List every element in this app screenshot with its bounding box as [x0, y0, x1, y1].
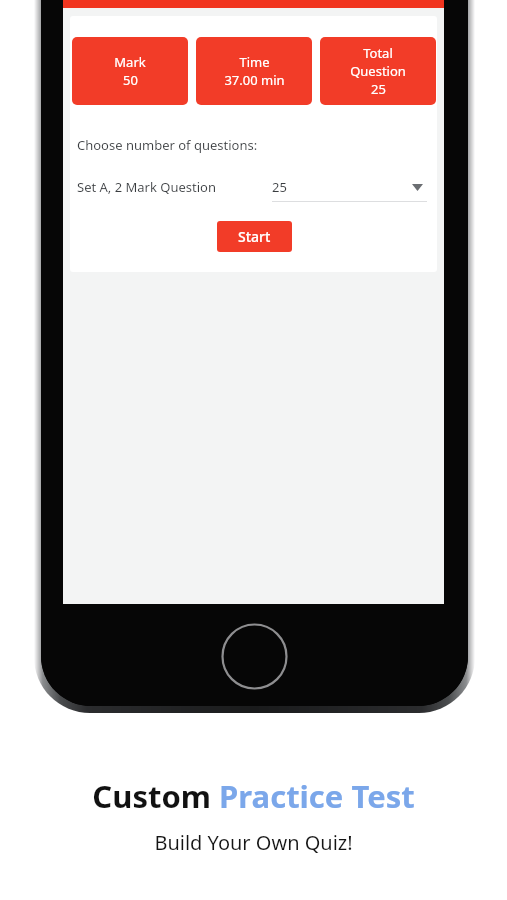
button[interactable]: Mark	[72, 37, 188, 105]
staticText: Custom Practice Test	[92, 775, 415, 817]
staticText: Set A, 2 Mark Question	[77, 178, 216, 196]
staticText: 25	[371, 80, 386, 98]
staticText: 37.00 min	[224, 71, 285, 89]
staticText: Time	[239, 53, 270, 71]
staticText: Question	[350, 62, 406, 80]
button[interactable]: Home	[221, 623, 288, 690]
button[interactable]: Set A, 2 Mark Question	[70, 171, 430, 209]
staticText: Start	[238, 227, 271, 246]
button[interactable]: Total	[320, 37, 436, 105]
staticText: 25	[272, 178, 287, 196]
staticText: Mark	[114, 53, 146, 71]
button[interactable]: Time	[196, 37, 312, 105]
button[interactable]: Start	[217, 221, 292, 252]
staticText: Choose number of questions:	[77, 136, 258, 154]
staticText: Build Your Own Quiz!	[154, 829, 353, 856]
other: Open dropdown	[412, 184, 423, 191]
staticText: 50	[123, 71, 138, 89]
staticText: Total	[363, 44, 393, 62]
